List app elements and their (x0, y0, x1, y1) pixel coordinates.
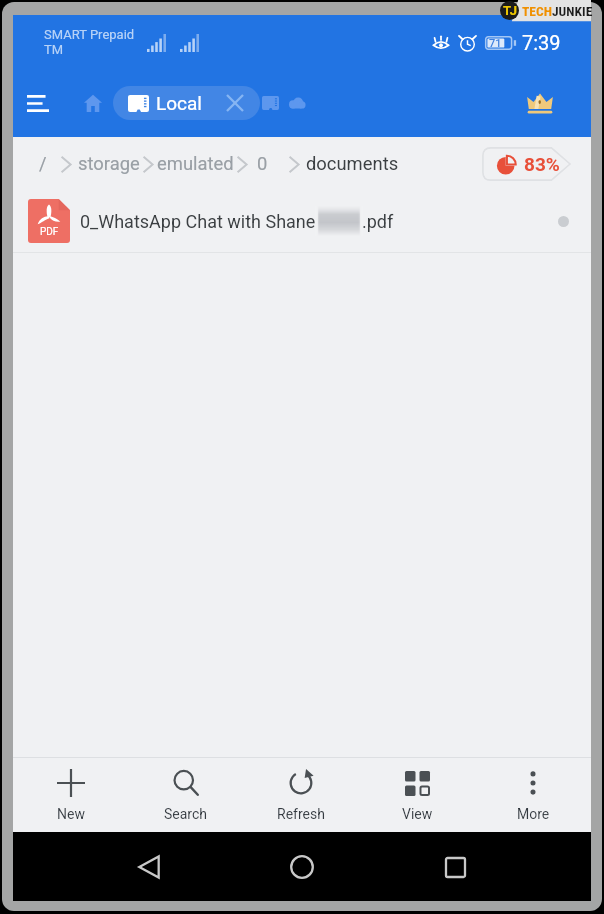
button[interactable]: View (359, 758, 475, 832)
staticText: PDF (40, 226, 59, 238)
button[interactable]: Home (276, 841, 328, 893)
staticText: documents (306, 153, 399, 175)
staticText: SMART Prepaid (44, 27, 135, 42)
staticText: 7:39 (522, 31, 561, 54)
staticText: Refresh (277, 806, 325, 822)
button[interactable]: More (475, 758, 591, 832)
button[interactable]: Recents (429, 841, 481, 893)
button[interactable]: New (13, 758, 128, 832)
staticText: New (57, 806, 85, 822)
staticText: .pdf (362, 211, 394, 232)
staticText: Search (164, 806, 208, 822)
button[interactable]: PDF (13, 190, 591, 252)
button[interactable]: Search (128, 758, 243, 832)
staticText: Local (156, 92, 202, 114)
button[interactable]: Back (123, 841, 175, 893)
staticText: More (517, 806, 550, 822)
button[interactable]: Home (75, 85, 111, 121)
staticText: 71 (489, 37, 502, 50)
staticText: 0 (257, 153, 268, 175)
button[interactable]: SD card (253, 86, 287, 120)
staticText: storage (78, 153, 140, 175)
staticText: 0_WhatsApp Chat with Shane (80, 211, 316, 232)
staticText: TJ (503, 3, 517, 18)
button[interactable]: Cloud (279, 86, 313, 120)
staticText: / (39, 153, 47, 175)
staticText: 83% (524, 153, 560, 175)
button[interactable]: Refresh (243, 758, 359, 832)
staticText: TECH (522, 3, 552, 19)
button[interactable]: Menu (14, 80, 60, 126)
button[interactable]: 83% (482, 147, 571, 181)
staticText: emulated (157, 153, 234, 175)
staticText: JUNKIE (552, 3, 593, 19)
staticText: View (402, 806, 433, 822)
button[interactable]: Local (113, 86, 260, 120)
staticText: TM (44, 42, 64, 57)
button[interactable]: Premium (518, 81, 562, 125)
